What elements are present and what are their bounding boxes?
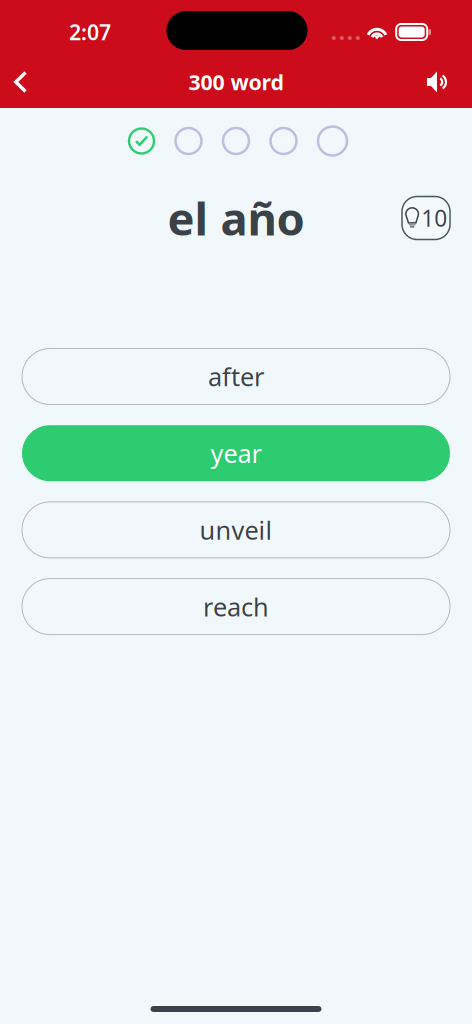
staticText: 300 word bbox=[188, 68, 283, 96]
button[interactable]: Hint, 10 available bbox=[402, 196, 450, 239]
staticText: unveil bbox=[199, 513, 272, 547]
staticText: reach bbox=[203, 590, 269, 623]
staticText: 2:07 bbox=[69, 18, 111, 46]
button[interactable]: year bbox=[22, 425, 450, 481]
staticText: el año bbox=[167, 188, 304, 248]
button[interactable]: Back bbox=[0, 60, 43, 104]
button[interactable]: Pronounce word bbox=[416, 60, 460, 104]
button[interactable]: after bbox=[22, 348, 450, 404]
staticText: year bbox=[210, 436, 261, 470]
staticText: 10 bbox=[421, 203, 447, 233]
button[interactable]: reach bbox=[22, 579, 450, 635]
button[interactable]: unveil bbox=[22, 502, 450, 558]
staticText: after bbox=[208, 360, 264, 393]
